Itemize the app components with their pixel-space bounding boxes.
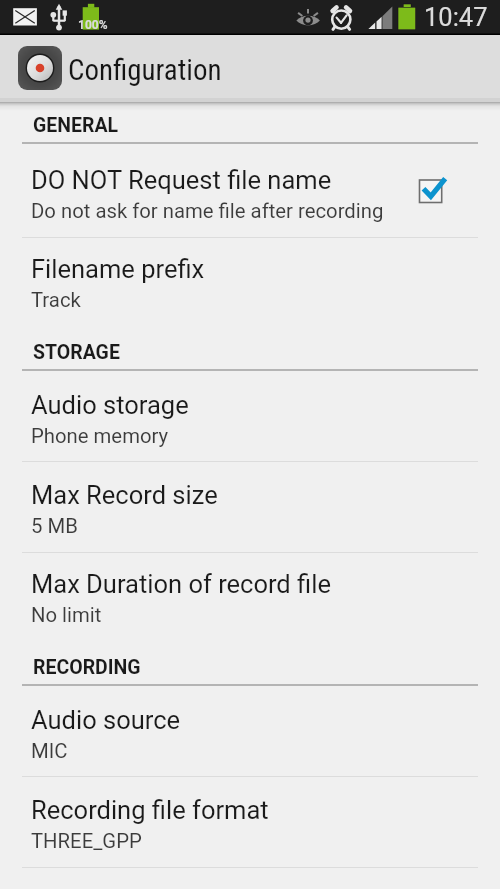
staticText: Max Duration of record file	[31, 569, 331, 599]
staticText: THREE_GPP	[31, 829, 142, 853]
button[interactable]: Configuration	[0, 35, 500, 102]
staticText: Phone memory	[31, 424, 169, 448]
staticText: Recording file format	[31, 795, 269, 825]
staticText: Do not ask for name file after recording	[31, 199, 384, 223]
staticText: Audio source	[31, 705, 181, 735]
staticText: GENERAL	[33, 114, 119, 137]
staticText: Track	[31, 288, 81, 312]
staticText: 10:47	[424, 2, 488, 32]
staticText: 100%	[78, 18, 108, 32]
staticText: No limit	[31, 603, 102, 627]
button[interactable]: Max Record size	[0, 462, 500, 553]
button[interactable]: DO NOT Request file name	[0, 144, 500, 238]
staticText: STORAGE	[33, 341, 120, 364]
button[interactable]: Toggle do not request file name	[418, 178, 448, 208]
staticText: Configuration	[68, 53, 222, 87]
button[interactable]: Max Duration of record file	[0, 553, 500, 644]
staticText: 5 MB	[31, 514, 78, 538]
button[interactable]: Audio source	[0, 686, 500, 777]
staticText: Audio storage	[31, 390, 189, 420]
button[interactable]: Filename prefix	[0, 238, 500, 329]
staticText: RECORDING	[33, 656, 141, 679]
staticText: MIC	[31, 739, 68, 763]
button[interactable]: Recording file format	[0, 777, 500, 868]
button[interactable]: Audio storage	[0, 371, 500, 462]
staticText: Filename prefix	[31, 254, 205, 284]
staticText: Max Record size	[31, 480, 218, 510]
staticText: DO NOT Request file name	[31, 165, 332, 195]
